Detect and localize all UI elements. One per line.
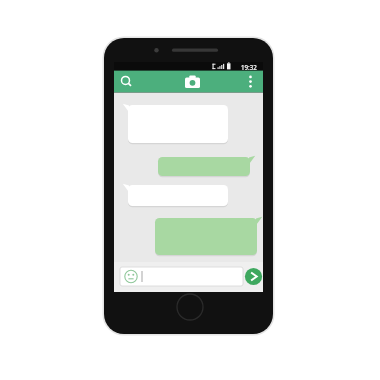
button[interactable]: Send bbox=[245, 267, 264, 286]
button[interactable]: Home bbox=[177, 294, 203, 320]
button[interactable]: More options bbox=[240, 70, 262, 92]
button[interactable]: Sent message bbox=[155, 218, 257, 255]
staticText: 19:32 bbox=[241, 63, 257, 71]
button[interactable]: Message input bbox=[142, 266, 243, 287]
button[interactable]: Search bbox=[118, 70, 142, 92]
button[interactable]: Camera bbox=[180, 70, 206, 92]
button[interactable]: Emoji bbox=[124, 268, 142, 286]
button[interactable]: Sent message bbox=[158, 157, 250, 176]
